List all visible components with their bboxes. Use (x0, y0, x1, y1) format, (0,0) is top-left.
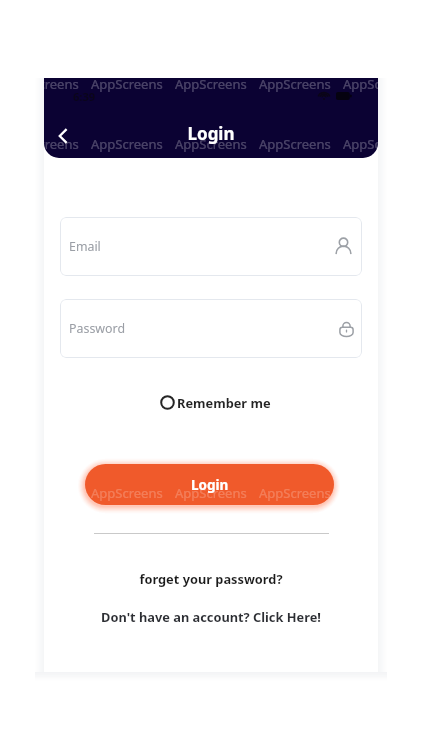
staticText: Login (44, 122, 378, 145)
staticText: AppScreens (44, 78, 79, 93)
staticText: Remember me (177, 394, 271, 411)
button[interactable]: Don't have an account? Click Here! (44, 608, 378, 625)
button[interactable]: AppScreens (85, 464, 334, 505)
staticText: AppScreens (259, 135, 331, 153)
staticText: AppScreens (91, 135, 163, 153)
staticText: AppScreens (259, 484, 331, 502)
staticText: AppScreens (175, 135, 247, 153)
staticText: 6:39 (73, 89, 95, 104)
staticText: AppScreens (343, 135, 378, 153)
staticText: AppScreens (343, 78, 378, 93)
staticText: AppScreens (91, 78, 163, 93)
button[interactable]: Email (60, 217, 362, 276)
staticText: AppScreens (259, 78, 331, 93)
button[interactable]: forget your password? (44, 570, 378, 587)
staticText: AppScreens (175, 484, 247, 502)
button[interactable]: Back (45, 118, 81, 154)
staticText: Password (69, 320, 126, 337)
button[interactable]: Password (60, 299, 362, 358)
button[interactable]: Remember me (158, 392, 273, 413)
staticText: AppScreens (175, 78, 247, 93)
staticText: AppScreens (44, 135, 79, 153)
staticText: AppScreens (91, 484, 163, 502)
staticText: Email (69, 238, 101, 255)
staticText: Login (191, 476, 229, 494)
